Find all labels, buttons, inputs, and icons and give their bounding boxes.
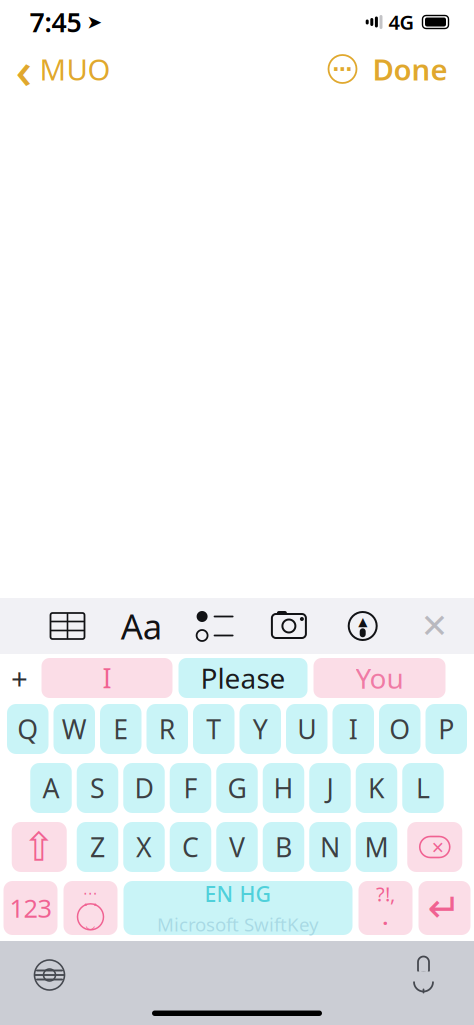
staticText: E [113, 711, 128, 747]
button[interactable]: V [216, 822, 258, 872]
staticText: W [62, 711, 87, 747]
staticText: S [90, 770, 105, 806]
staticText: 4G [388, 9, 414, 35]
button[interactable]: B [263, 822, 304, 872]
button[interactable]: L [402, 763, 444, 813]
staticText: Done [372, 49, 447, 88]
button[interactable]: More options [322, 47, 362, 91]
staticText: Please [200, 659, 285, 697]
button[interactable]: Markup [335, 604, 391, 648]
button[interactable]: Emoji [63, 881, 117, 935]
staticText: MUO [39, 49, 110, 88]
button[interactable]: E [100, 704, 141, 754]
button[interactable]: Done [362, 46, 457, 92]
staticText: M [364, 829, 388, 865]
button[interactable]: O [379, 704, 420, 754]
staticText: T [206, 711, 221, 747]
staticText: ↵ [427, 885, 461, 931]
staticText: H [273, 770, 293, 806]
staticText: 123 [9, 891, 51, 925]
button[interactable]: Dictate [396, 948, 450, 1002]
button[interactable]: Next keyboard [22, 948, 76, 1002]
staticText: I [349, 711, 358, 747]
button[interactable]: X [123, 822, 165, 872]
staticText: ⋯ [83, 885, 98, 902]
staticText: × [432, 833, 444, 861]
button[interactable]: C [170, 822, 211, 872]
button[interactable]: I [41, 658, 172, 698]
button[interactable]: ‹ [0, 46, 120, 92]
staticText: B [275, 829, 292, 865]
button[interactable]: Close keyboard [408, 604, 460, 648]
button[interactable]: A [30, 763, 72, 813]
staticText: Z [90, 829, 105, 865]
button[interactable]: U [286, 704, 327, 754]
button[interactable]: Text formatting [113, 604, 169, 648]
button[interactable]: N [309, 822, 351, 872]
staticText: ?!, [376, 880, 395, 907]
button[interactable]: H [263, 763, 304, 813]
staticText: ▲ [358, 615, 367, 628]
button[interactable]: Space [123, 881, 352, 935]
staticText: L [416, 770, 430, 806]
button[interactable]: Checklist [187, 604, 243, 648]
button[interactable]: Camera [261, 604, 317, 648]
staticText: ‿ [85, 909, 95, 930]
button[interactable]: J [309, 763, 351, 813]
staticText: Microsoft SwiftKey [157, 912, 319, 937]
staticText: J [326, 770, 333, 806]
button[interactable]: S [77, 763, 118, 813]
staticText: D [134, 770, 153, 806]
staticText: Y [253, 711, 268, 747]
button[interactable]: Numbers and symbols [3, 881, 57, 935]
button[interactable]: Q [7, 704, 48, 754]
staticText: ➤ [86, 11, 102, 33]
button[interactable]: R [146, 704, 188, 754]
staticText: 7:45 [29, 4, 81, 40]
staticText: ‹ [15, 35, 32, 103]
staticText: You [355, 659, 403, 697]
staticText: U [297, 711, 316, 747]
button[interactable]: Add clipboard item [3, 658, 35, 698]
staticText: P [438, 711, 454, 747]
button[interactable]: D [123, 763, 165, 813]
button[interactable]: P [425, 704, 467, 754]
staticText: EN HG [204, 879, 271, 908]
staticText: O [389, 711, 410, 747]
staticText: ✕ [420, 607, 448, 645]
button[interactable]: G [216, 763, 258, 813]
button[interactable]: Punctuation [358, 881, 412, 935]
staticText: X [136, 829, 152, 865]
staticText: ⇧ [22, 824, 56, 870]
button[interactable]: K [356, 763, 397, 813]
staticText: ⋯ [332, 58, 352, 80]
staticText: G [227, 770, 246, 806]
staticText: R [159, 711, 176, 747]
staticText: N [320, 829, 340, 865]
staticText: K [368, 770, 385, 806]
button[interactable]: Please [178, 658, 307, 698]
button[interactable]: M [356, 822, 397, 872]
button[interactable]: Delete [407, 822, 462, 872]
staticText: + [11, 658, 28, 697]
button[interactable]: Z [77, 822, 118, 872]
button[interactable]: Y [239, 704, 281, 754]
staticText: · [382, 909, 388, 936]
button[interactable]: I [332, 704, 374, 754]
staticText: V [229, 829, 245, 865]
button[interactable]: Return [418, 881, 470, 935]
button[interactable]: Table [39, 604, 95, 648]
staticText: I [102, 660, 111, 696]
button[interactable]: F [170, 763, 211, 813]
button[interactable]: T [193, 704, 234, 754]
staticText: Aa [121, 603, 162, 649]
staticText: F [183, 770, 197, 806]
staticText: C [182, 829, 199, 865]
button[interactable]: Shift [12, 822, 67, 872]
staticText: Q [17, 711, 38, 747]
button[interactable]: You [313, 658, 445, 698]
staticText: A [42, 770, 59, 806]
button[interactable]: W [53, 704, 95, 754]
